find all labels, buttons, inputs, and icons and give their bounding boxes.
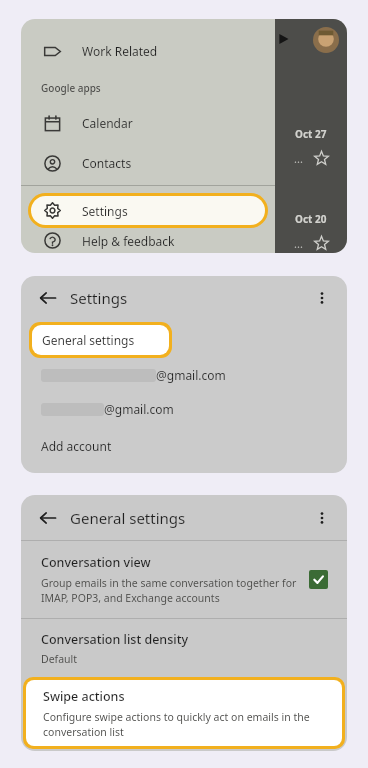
staticText: Help & feedback xyxy=(82,233,175,249)
staticText: General settings xyxy=(70,508,186,528)
button[interactable]: Contacts xyxy=(21,143,347,183)
staticText: Swipe actions xyxy=(43,688,125,705)
staticText: @gmail.com xyxy=(156,367,226,383)
staticText: ... xyxy=(294,236,303,251)
button[interactable]: Work Related xyxy=(21,29,347,73)
staticText: Oct 27 xyxy=(295,127,327,141)
button[interactable]: @gmail.com xyxy=(21,392,347,426)
staticText: ... xyxy=(294,151,303,166)
staticText: Calendar xyxy=(82,115,133,131)
button[interactable]: Conversation view enabled xyxy=(309,570,328,589)
button[interactable]: @gmail.com xyxy=(21,358,347,392)
staticText: Add account xyxy=(41,438,112,454)
staticText: General settings xyxy=(42,332,135,348)
staticText: Default xyxy=(41,652,78,666)
staticText: Contacts xyxy=(82,155,132,171)
button[interactable]: Back xyxy=(34,284,62,312)
button[interactable]: Settings xyxy=(31,196,265,225)
button[interactable]: More options xyxy=(309,505,335,531)
staticText: Conversation list density xyxy=(41,631,189,648)
button[interactable]: Add account xyxy=(21,426,347,466)
staticText: Conversation view xyxy=(41,554,151,571)
button[interactable]: Conversation list density xyxy=(21,619,347,677)
button[interactable]: Calendar xyxy=(21,103,347,143)
staticText: Work Related xyxy=(82,43,158,59)
staticText: Google apps xyxy=(41,81,101,95)
button[interactable]: More options xyxy=(309,285,335,311)
staticText: @gmail.com xyxy=(104,401,174,417)
staticText: Group emails in the same conversation to… xyxy=(41,576,297,605)
staticText: Settings xyxy=(70,288,128,308)
button[interactable]: Conversation view xyxy=(21,541,347,618)
button[interactable]: Swipe actions xyxy=(26,680,342,746)
staticText: Configure swipe actions to quickly act o… xyxy=(43,710,310,739)
staticText: Settings xyxy=(82,203,128,219)
button[interactable]: Back xyxy=(34,504,62,532)
button[interactable]: General settings xyxy=(32,325,169,355)
staticText: Oct 20 xyxy=(295,212,327,226)
button[interactable]: Help & feedback xyxy=(21,228,347,253)
